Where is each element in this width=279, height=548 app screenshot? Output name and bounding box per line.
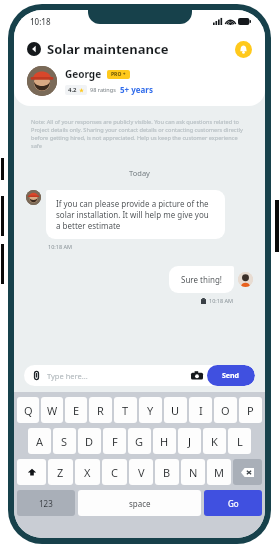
button[interactable]: E [65, 397, 87, 423]
staticText: Z [57, 465, 64, 480]
staticText: Sure thing! [181, 274, 222, 285]
button[interactable]: G [128, 428, 151, 454]
staticText: L [237, 434, 243, 449]
button[interactable]: O [214, 397, 237, 423]
staticText: N [189, 465, 198, 480]
button[interactable]: N [181, 459, 205, 485]
staticText: V [138, 465, 145, 480]
staticText: H [160, 434, 169, 449]
button[interactable]: Shift [17, 459, 46, 485]
staticText: 5+ years [120, 84, 153, 95]
button[interactable]: K [203, 428, 226, 454]
button[interactable]: M [207, 459, 231, 485]
staticText: X [84, 465, 91, 480]
button[interactable]: Z [48, 459, 73, 485]
staticText: E [73, 403, 80, 418]
staticText: J [188, 434, 192, 449]
staticText: Solar maintenance [47, 40, 169, 58]
button[interactable]: P [239, 397, 262, 423]
button[interactable]: H [153, 428, 176, 454]
staticText: I [199, 403, 203, 418]
button[interactable]: C [102, 459, 127, 485]
button[interactable]: Sure thing! [169, 266, 234, 293]
staticText: Send [222, 371, 240, 381]
staticText: O [221, 403, 230, 418]
staticText: M [214, 465, 224, 480]
button[interactable]: A [28, 428, 51, 454]
staticText: C [111, 465, 118, 480]
staticText: George [65, 67, 102, 81]
button[interactable]: X [75, 459, 100, 485]
button[interactable]: F [103, 428, 126, 454]
button[interactable]: L [228, 428, 251, 454]
button[interactable]: V [129, 459, 153, 485]
staticText: A [36, 434, 44, 449]
staticText: 4.2 [68, 86, 77, 94]
button[interactable]: D [78, 428, 101, 454]
staticText: D [85, 434, 94, 449]
staticText: 10:18 AM [48, 243, 72, 250]
button[interactable]: 123 [17, 490, 75, 516]
staticText: space [129, 498, 151, 509]
button[interactable]: I [189, 397, 212, 423]
button[interactable]: Send [207, 365, 255, 386]
button[interactable]: T [114, 397, 137, 423]
staticText: 10:18 [30, 16, 51, 27]
button[interactable]: If you can please provide a picture of t… [46, 190, 225, 239]
staticText: S [61, 434, 68, 449]
button[interactable]: Q [17, 397, 39, 423]
button[interactable]: Y [139, 397, 162, 423]
staticText: If you can please provide a picture of t… [56, 198, 215, 231]
button[interactable]: space [78, 490, 201, 516]
staticText: T [122, 403, 129, 418]
staticText: 123 [39, 498, 53, 509]
staticText: U [171, 403, 180, 418]
button[interactable]: U [164, 397, 187, 423]
staticText: G [135, 434, 144, 449]
button[interactable]: S [53, 428, 76, 454]
staticText: Y [147, 403, 154, 418]
button[interactable]: Attach file [32, 371, 41, 380]
staticText: P [247, 403, 254, 418]
staticText: Today [14, 168, 265, 178]
staticText: PRO + [111, 71, 126, 78]
button[interactable]: Go [204, 490, 262, 516]
staticText: 98 ratings [90, 86, 116, 93]
staticText: K [211, 434, 218, 449]
button[interactable]: W [41, 397, 63, 423]
button[interactable]: B [155, 459, 179, 485]
button[interactable]: Back [27, 42, 41, 56]
button[interactable]: R [89, 397, 112, 423]
staticText: Go [228, 498, 239, 509]
staticText: R [97, 403, 104, 418]
button[interactable]: Camera [191, 370, 203, 382]
staticText: Q [24, 403, 33, 418]
staticText: Type here... [47, 371, 191, 381]
staticText: F [112, 434, 118, 449]
button[interactable]: Backspace [233, 459, 262, 485]
staticText: Note: All of your responses are publicly… [31, 118, 248, 150]
button[interactable]: Notifications [235, 41, 252, 58]
staticText: 10:18 AM [209, 297, 233, 304]
button[interactable]: J [178, 428, 201, 454]
staticText: B [163, 465, 171, 480]
staticText: W [47, 403, 58, 418]
